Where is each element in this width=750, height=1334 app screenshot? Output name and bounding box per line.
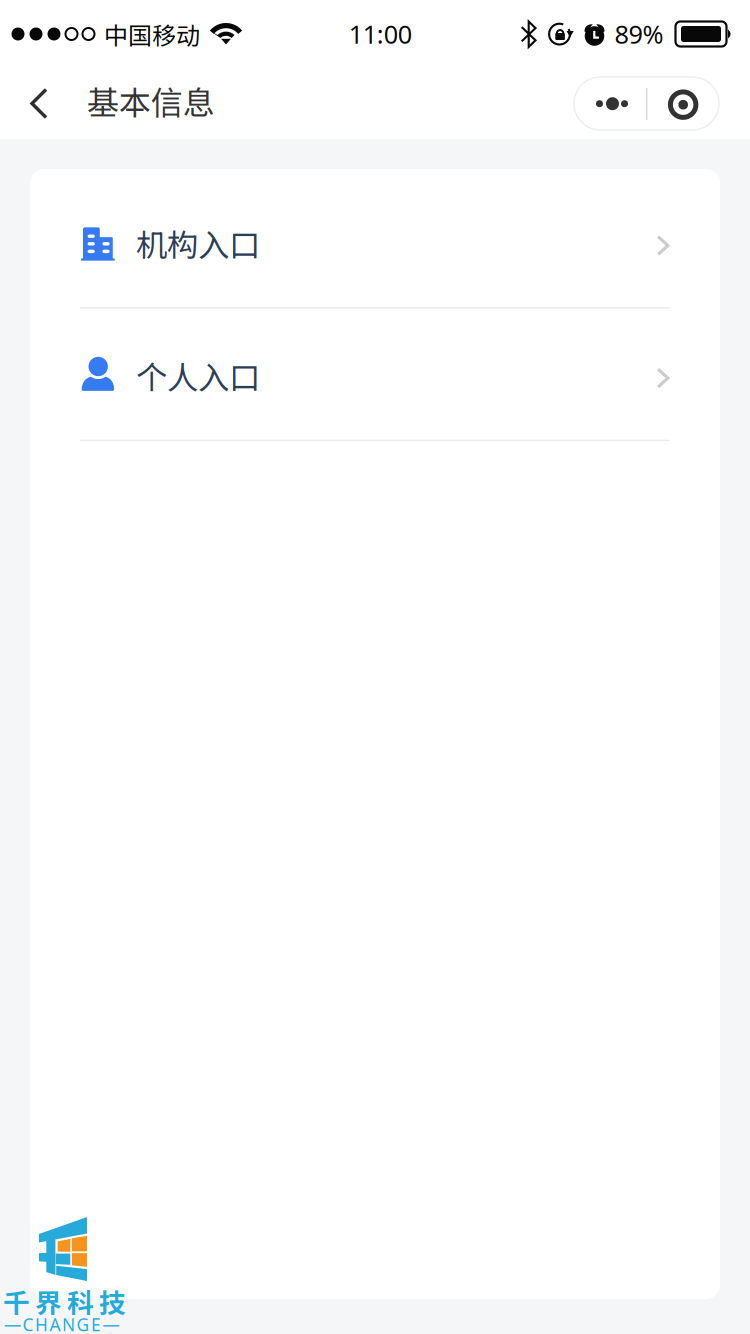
- button[interactable]: 机构入口: [30, 176, 720, 309]
- button[interactable]: 个人入口: [30, 309, 720, 441]
- staticText: 基本信息: [87, 77, 215, 124]
- staticText: 中国移动: [104, 17, 200, 51]
- button[interactable]: More options and close mini program: [574, 77, 719, 130]
- staticText: 11:00: [349, 17, 412, 51]
- staticText: 89%: [614, 17, 663, 51]
- staticText: 机构入口: [136, 220, 260, 266]
- staticText: 个人入口: [136, 353, 260, 398]
- staticText: —CHANGE—: [4, 1313, 119, 1334]
- staticText: 千界科技: [3, 1282, 126, 1321]
- button[interactable]: Back: [29, 68, 87, 139]
